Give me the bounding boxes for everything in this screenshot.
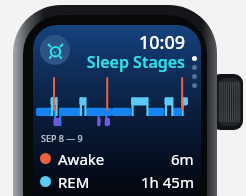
staticText: 10:09 <box>33 30 185 55</box>
button[interactable]: REM <box>40 171 194 192</box>
staticText: 1h 45m <box>141 172 194 192</box>
staticText: Awake <box>58 149 105 169</box>
button[interactable]: Awake <box>40 148 194 169</box>
staticText: REM <box>58 172 90 192</box>
staticText: SEP 8 — 9 <box>41 132 83 144</box>
staticText: 6m <box>171 149 194 169</box>
button[interactable]: Alarm <box>40 35 70 65</box>
button[interactable]: Sleep stages chart <box>36 76 188 129</box>
button[interactable]: Sleep Stages <box>33 51 185 73</box>
